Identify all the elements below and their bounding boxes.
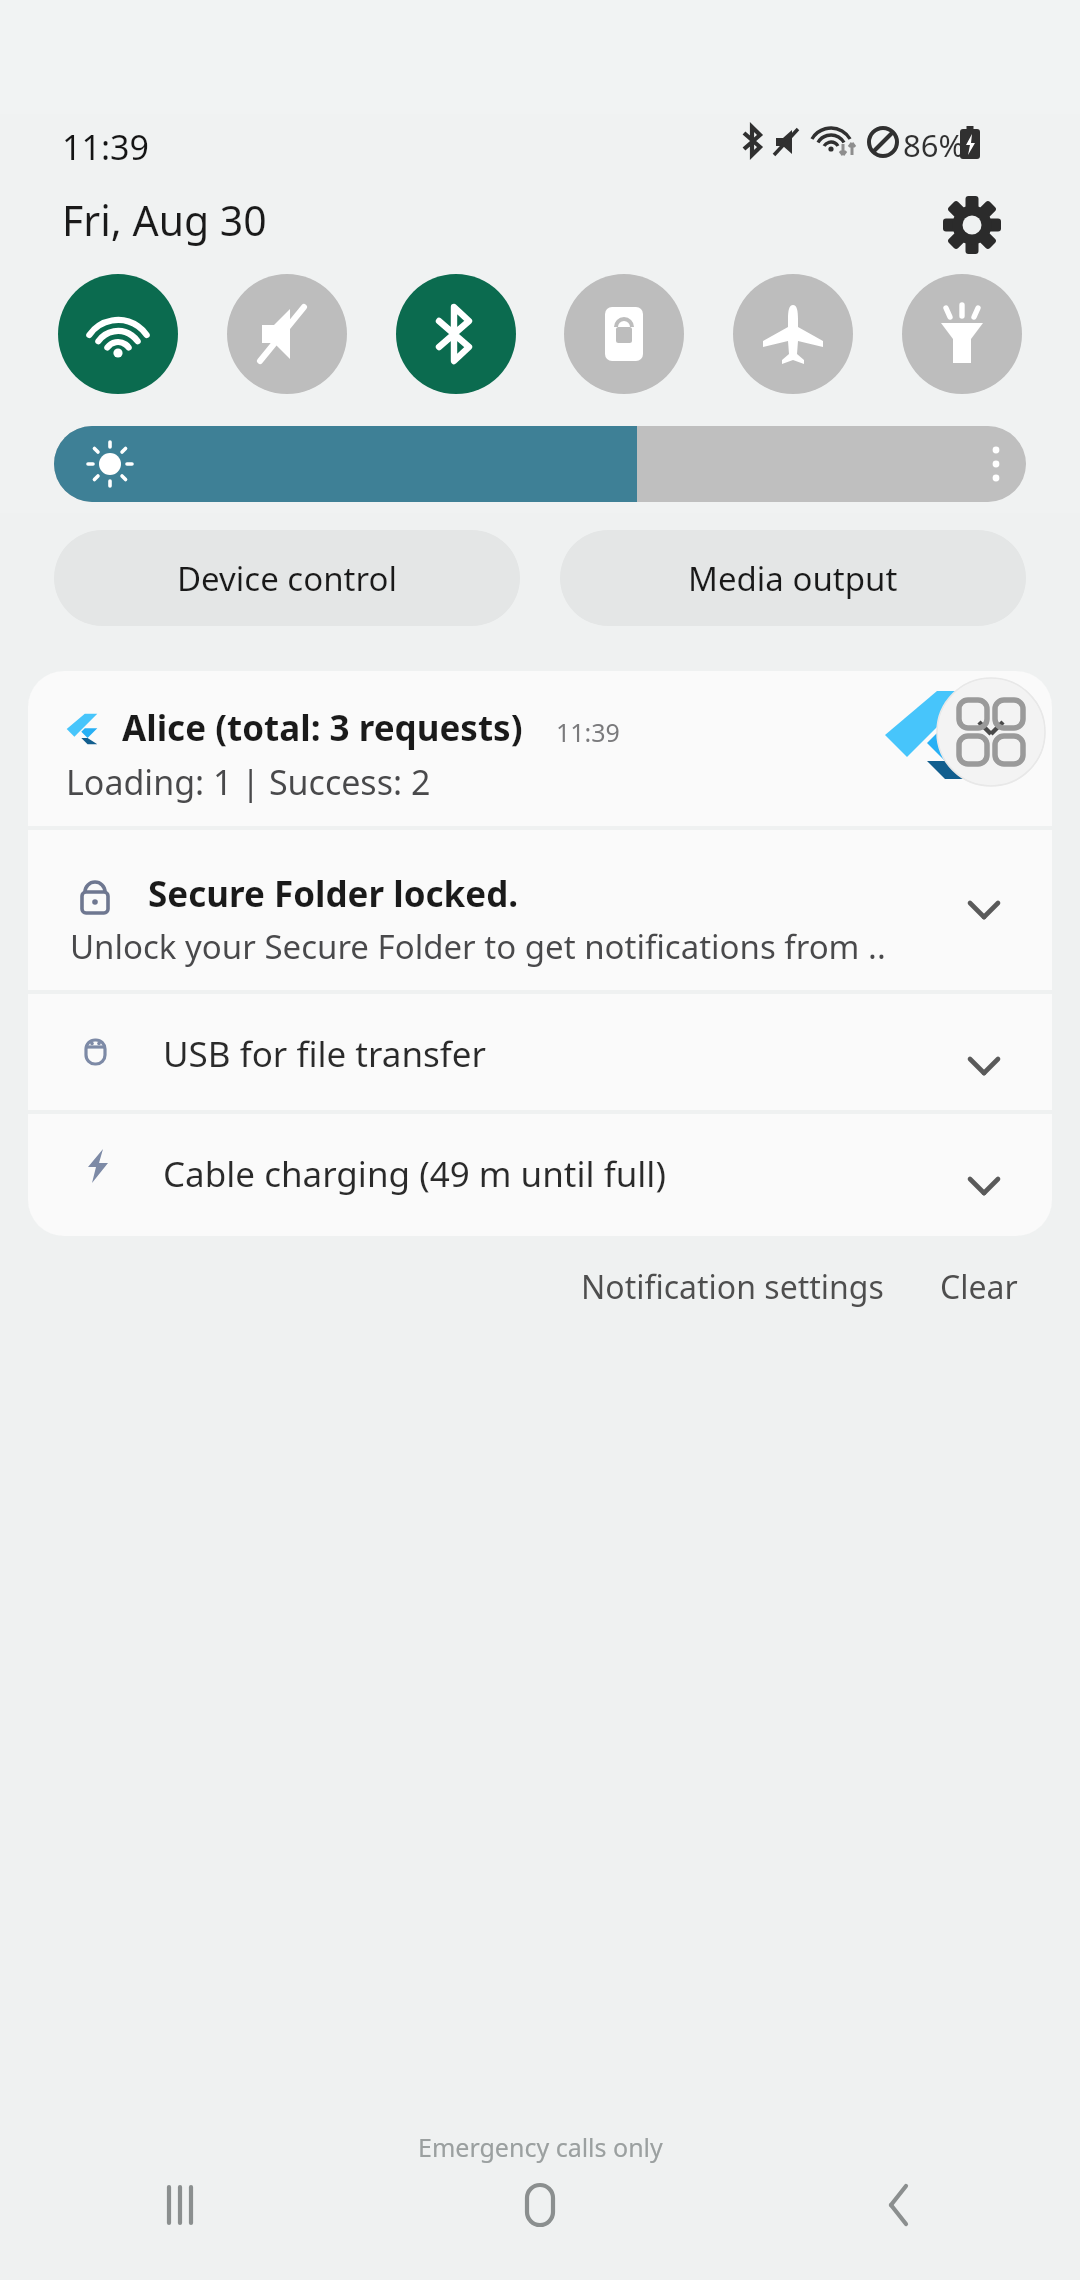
button[interactable]: Notification settings: [575, 1257, 890, 1317]
button[interactable]: Cable charging (49 m until full): [28, 1114, 1052, 1236]
button[interactable]: Expand: [936, 677, 1046, 787]
button[interactable]: Clear: [934, 1257, 1024, 1317]
staticText: Fri, Aug 30: [62, 192, 267, 248]
button[interactable]: USB for file transfer: [28, 994, 1052, 1110]
staticText: Cable charging (49 m until full): [163, 1150, 666, 1198]
button[interactable]: Device control: [54, 530, 520, 626]
button[interactable]: Flashlight: [902, 274, 1022, 394]
staticText: Secure Folder locked.: [148, 870, 519, 918]
staticText: Clear: [940, 1265, 1018, 1309]
staticText: Alice (total: 3 requests): [122, 704, 523, 752]
button[interactable]: Media output: [560, 530, 1026, 626]
button[interactable]: Secure Folder locked.: [28, 830, 1052, 990]
staticText: USB for file transfer: [163, 1030, 487, 1078]
button[interactable]: Airplane mode: [733, 274, 853, 394]
button[interactable]: Settings: [928, 190, 1016, 260]
staticText: Media output: [688, 556, 898, 601]
button[interactable]: Brightness: [54, 426, 1026, 502]
button[interactable]: Wi-Fi: [58, 274, 178, 394]
button[interactable]: Expand: [956, 1038, 1012, 1094]
button[interactable]: Back: [825, 2130, 975, 2280]
button[interactable]: Sound: [227, 274, 347, 394]
staticText: 11:39: [556, 715, 620, 749]
button[interactable]: Home: [465, 2130, 615, 2280]
staticText: Loading: 1 | Success: 2: [66, 759, 431, 805]
button[interactable]: Expand: [956, 1158, 1012, 1214]
staticText: Notification settings: [581, 1265, 884, 1309]
staticText: 86%: [903, 124, 965, 166]
staticText: 11:39: [62, 124, 149, 170]
button[interactable]: Secure: [564, 274, 684, 394]
button[interactable]: Recents: [105, 2130, 255, 2280]
staticText: Device control: [177, 556, 397, 601]
button[interactable]: Bluetooth: [396, 274, 516, 394]
staticText: Emergency calls only: [418, 2130, 663, 2164]
staticText: Unlock your Secure Folder to get notific…: [70, 924, 886, 969]
button[interactable]: Expand: [956, 882, 1012, 938]
button[interactable]: Alice (total: 3 requests): [28, 671, 1052, 826]
